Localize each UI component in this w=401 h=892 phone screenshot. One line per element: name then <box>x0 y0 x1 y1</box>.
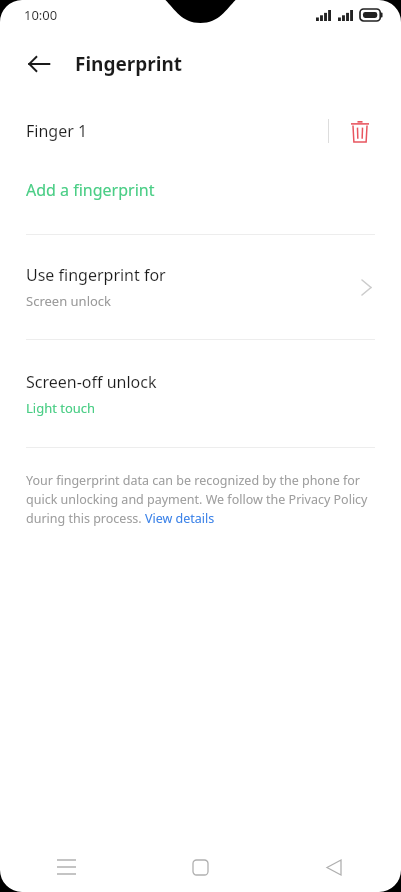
button[interactable]: Finger 1 <box>0 105 401 157</box>
button[interactable]: Back <box>267 842 401 892</box>
staticText: Add a fingerprint <box>26 179 155 201</box>
button[interactable]: Your fingerprint data can be recognized … <box>0 472 401 527</box>
button[interactable]: Back <box>24 49 54 79</box>
staticText: Use fingerprint for <box>26 264 166 286</box>
staticText: Screen unlock <box>26 292 112 310</box>
staticText: Finger 1 <box>26 120 88 142</box>
staticText: Screen-off unlock <box>26 371 157 393</box>
staticText: Light touch <box>26 399 96 417</box>
button[interactable]: Add a fingerprint <box>0 170 401 210</box>
button[interactable]: Use fingerprint for <box>0 235 401 339</box>
button[interactable]: Delete fingerprint <box>343 114 377 148</box>
button[interactable]: Recent apps <box>0 842 133 892</box>
button[interactable]: Home <box>133 842 267 892</box>
staticText: Your fingerprint data can be recognized … <box>26 472 375 527</box>
button[interactable]: Screen-off unlock <box>0 340 401 447</box>
staticText: 10:00 <box>24 6 58 24</box>
staticText: Fingerprint <box>75 51 183 77</box>
